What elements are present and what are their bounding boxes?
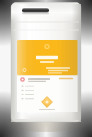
button[interactable]: Yellow labelled jerrycan product photo bbox=[0, 0, 92, 137]
